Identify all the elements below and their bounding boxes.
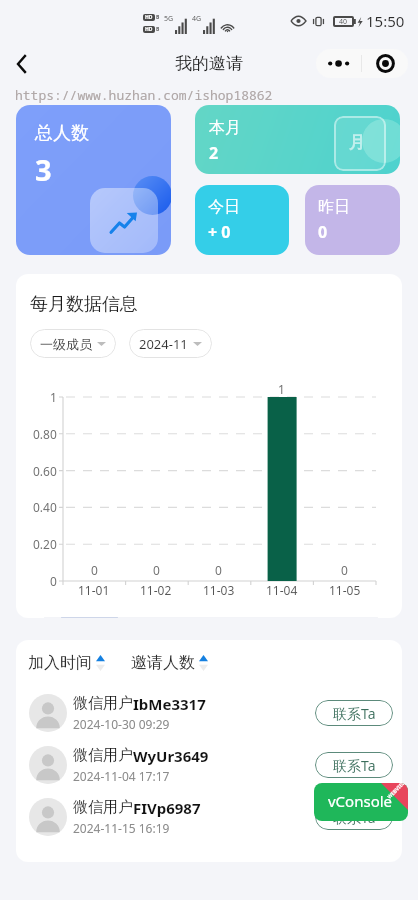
- button[interactable]: 邀请人数: [131, 653, 208, 673]
- staticText: 0: [50, 573, 57, 589]
- staticText: B: [156, 14, 160, 21]
- button[interactable]: vConsole: [314, 783, 408, 821]
- staticText: 联系Ta: [333, 756, 376, 775]
- staticText: 0: [215, 562, 222, 578]
- staticText: 5G: [164, 14, 174, 24]
- staticText: 2024-11-15 16:19: [73, 820, 170, 836]
- staticText: 0.80: [33, 426, 57, 442]
- staticText: 11-04: [266, 582, 298, 598]
- staticText: 联系Ta: [333, 808, 376, 827]
- staticText: 联系Ta: [333, 704, 376, 723]
- staticText: 每月数据信息: [30, 293, 138, 316]
- button[interactable]: 联系Ta: [315, 752, 393, 778]
- staticText: 微信用户: [73, 694, 133, 713]
- button[interactable]: 一级成员: [30, 329, 116, 358]
- staticText: 月: [349, 133, 365, 153]
- staticText: 1: [278, 381, 285, 397]
- staticText: https://www.huzhan.com/ishop18862: [15, 86, 418, 104]
- button[interactable]: 微信用户: [16, 739, 402, 791]
- staticText: 3: [35, 150, 52, 189]
- staticText: 2024-11-04 17:17: [73, 768, 170, 784]
- staticText: 总人数: [35, 122, 89, 145]
- button[interactable]: 2024-11: [129, 329, 212, 358]
- button[interactable]: 月: [195, 105, 400, 174]
- staticText: 我的邀请: [175, 53, 243, 74]
- staticText: FIVp6987: [133, 798, 201, 818]
- staticText: 邀请人数: [131, 653, 195, 673]
- staticText: 0: [91, 562, 98, 578]
- button[interactable]: 联系Ta: [315, 700, 393, 726]
- staticText: 1: [50, 389, 57, 405]
- staticText: 2: [209, 142, 219, 164]
- staticText: 加入时间: [28, 653, 92, 673]
- button[interactable]: 加入时间: [28, 653, 105, 673]
- staticText: IbMe3317: [133, 694, 206, 714]
- staticText: 微信用户: [73, 798, 133, 817]
- button[interactable]: More: [316, 49, 361, 78]
- button[interactable]: 总人数: [16, 105, 171, 255]
- staticText: 15:50: [366, 11, 405, 31]
- staticText: 0: [341, 562, 348, 578]
- staticText: 微信用户: [73, 746, 133, 765]
- staticText: 11-01: [78, 582, 110, 598]
- staticText: 0.20: [33, 536, 57, 552]
- staticText: 2024-11: [139, 335, 188, 353]
- staticText: 4G: [192, 14, 202, 24]
- staticText: 40: [339, 17, 348, 27]
- button[interactable]: 微信用户: [16, 791, 402, 843]
- staticText: + 0: [208, 221, 231, 243]
- staticText: B: [156, 26, 160, 33]
- staticText: 2024-10-30 09:29: [73, 716, 170, 732]
- button[interactable]: Close: [362, 49, 408, 78]
- staticText: HD: [145, 14, 153, 21]
- staticText: 今日: [208, 197, 240, 217]
- staticText: WEBVIEW: [386, 783, 408, 800]
- staticText: 0: [153, 562, 160, 578]
- button[interactable]: Back: [3, 46, 39, 82]
- staticText: HD: [145, 26, 153, 33]
- staticText: 本月: [209, 118, 241, 138]
- button[interactable]: 联系Ta: [315, 804, 393, 830]
- button[interactable]: 微信用户: [16, 687, 402, 739]
- staticText: 一级成员: [40, 336, 92, 352]
- button[interactable]: 今日: [195, 185, 289, 255]
- button[interactable]: 昨日: [305, 185, 400, 255]
- staticText: 0.40: [33, 499, 57, 515]
- staticText: 0: [318, 221, 328, 243]
- staticText: 0.60: [33, 463, 57, 479]
- staticText: 昨日: [318, 197, 350, 217]
- staticText: WyUr3649: [133, 746, 209, 766]
- staticText: 11-05: [329, 582, 361, 598]
- staticText: 11-02: [140, 582, 172, 598]
- staticText: vConsole: [328, 791, 393, 811]
- staticText: 11-03: [203, 582, 235, 598]
